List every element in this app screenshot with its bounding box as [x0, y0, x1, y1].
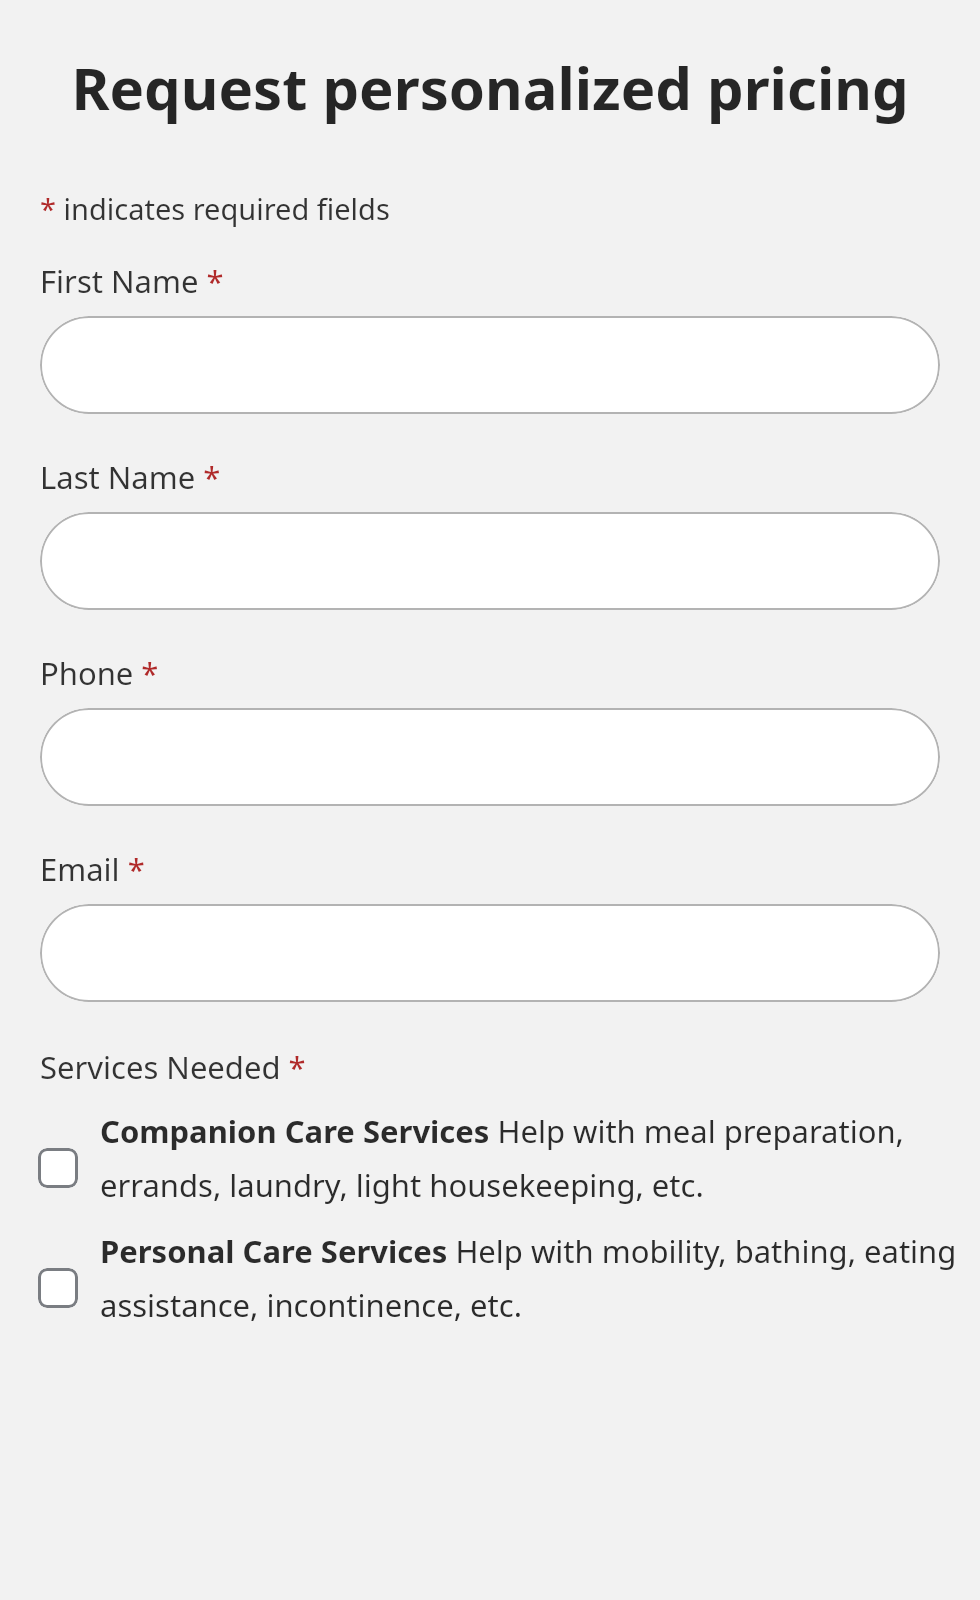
staticText: Companion Care Services Help with meal p… — [100, 1110, 960, 1206]
button[interactable]: First Name input — [40, 316, 940, 414]
staticText: First Name * — [40, 260, 224, 302]
button[interactable]: Phone input — [40, 708, 940, 806]
button[interactable]: Email input — [40, 904, 940, 1002]
staticText: Request personalized pricing — [24, 48, 956, 127]
staticText: Personal Care Services Help with mobilit… — [100, 1230, 960, 1326]
button[interactable]: Last Name input — [40, 512, 940, 610]
staticText: * indicates required fields — [40, 189, 390, 228]
staticText: Services Needed * — [40, 1046, 306, 1088]
staticText: Phone * — [40, 652, 159, 694]
staticText: Email * — [40, 848, 145, 890]
staticText: Last Name * — [40, 456, 221, 498]
button[interactable]: Personal Care Services Help with mobilit… — [0, 1230, 980, 1326]
button[interactable]: Companion Care Services Help with meal p… — [0, 1110, 980, 1206]
